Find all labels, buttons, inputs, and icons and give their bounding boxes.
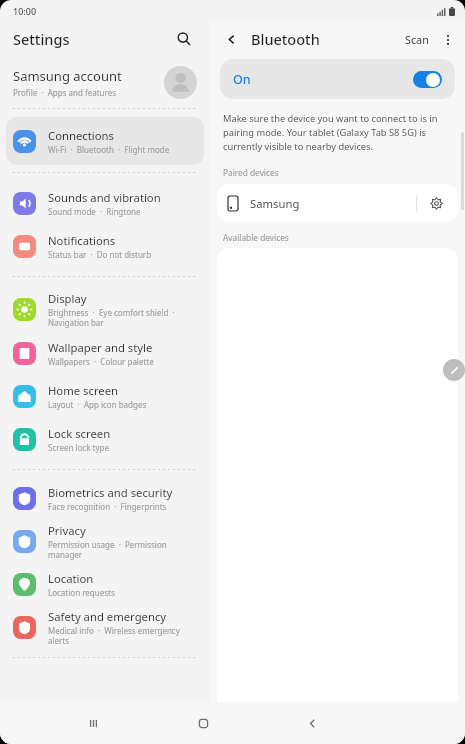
staticText: Settings	[13, 29, 70, 49]
button[interactable]: Privacy	[6, 521, 204, 561]
staticText: Layout · App icon badges	[48, 399, 147, 410]
button[interactable]: Biometrics and security	[6, 478, 204, 518]
staticText: Face recognition · Fingerprints	[48, 501, 167, 512]
staticText: Wi-Fi · Bluetooth · Flight mode	[48, 144, 170, 155]
staticText: Screen lock type	[48, 442, 109, 453]
staticText: Wallpaper and style	[48, 340, 153, 355]
button[interactable]: Back	[220, 28, 242, 50]
button[interactable]: Samsung	[217, 184, 458, 222]
staticText: Status bar · Do not disturb	[48, 249, 152, 260]
staticText: Safety and emergency	[48, 609, 167, 624]
button[interactable]: Notifications	[6, 226, 204, 266]
button[interactable]: Home screen	[6, 376, 204, 416]
staticText: Privacy	[48, 523, 86, 538]
button[interactable]: Location	[6, 564, 204, 604]
staticText: Connections	[48, 128, 114, 143]
button[interactable]: Display	[6, 285, 204, 333]
staticText: Lock screen	[48, 426, 111, 441]
staticText: Bluetooth	[251, 29, 320, 49]
staticText: Notifications	[48, 233, 116, 248]
staticText: Biometrics and security	[48, 485, 173, 500]
staticText: Location requests	[48, 587, 115, 598]
button[interactable]: Sounds and vibration	[6, 183, 204, 223]
button[interactable]: Recent apps	[76, 706, 110, 740]
button[interactable]: Safety and emergency	[6, 607, 204, 647]
staticText: Sounds and vibration	[48, 190, 161, 205]
button[interactable]: Back	[295, 706, 329, 740]
staticText: Make sure the device you want to connect…	[223, 112, 452, 153]
button[interactable]: Samsung account	[0, 56, 210, 108]
staticText: Paired devices	[223, 167, 279, 178]
staticText: Brightness · Eye comfort shield · Naviga…	[48, 307, 175, 328]
staticText: On	[233, 71, 251, 88]
button[interactable]: Connections	[6, 117, 204, 165]
button[interactable]: Search	[171, 26, 197, 52]
button[interactable]: Lock screen	[6, 419, 204, 459]
staticText: Medical info · Wireless emergency alerts	[48, 625, 197, 646]
button[interactable]: Home	[186, 706, 220, 740]
staticText: Profile · Apps and features	[13, 87, 117, 98]
staticText: 10:00	[13, 5, 37, 17]
staticText: Wallpapers · Colour palette	[48, 356, 154, 367]
button[interactable]: On	[220, 59, 455, 99]
staticText: Sound mode · Ringtone	[48, 206, 141, 217]
button[interactable]: Edit	[443, 359, 465, 381]
staticText: Location	[48, 571, 94, 586]
button[interactable]: More options	[436, 28, 460, 52]
staticText: Available devices	[223, 232, 289, 243]
button[interactable]: Wallpaper and style	[6, 333, 204, 373]
staticText: Samsung	[250, 196, 416, 211]
staticText: Display	[48, 291, 87, 306]
button[interactable]: Scan	[401, 27, 433, 52]
staticText: Scan	[405, 32, 429, 47]
button[interactable]: Device settings	[425, 192, 447, 214]
staticText: Home screen	[48, 383, 119, 398]
staticText: Permission usage · Permission manager	[48, 539, 197, 560]
staticText: Samsung account	[13, 67, 122, 85]
